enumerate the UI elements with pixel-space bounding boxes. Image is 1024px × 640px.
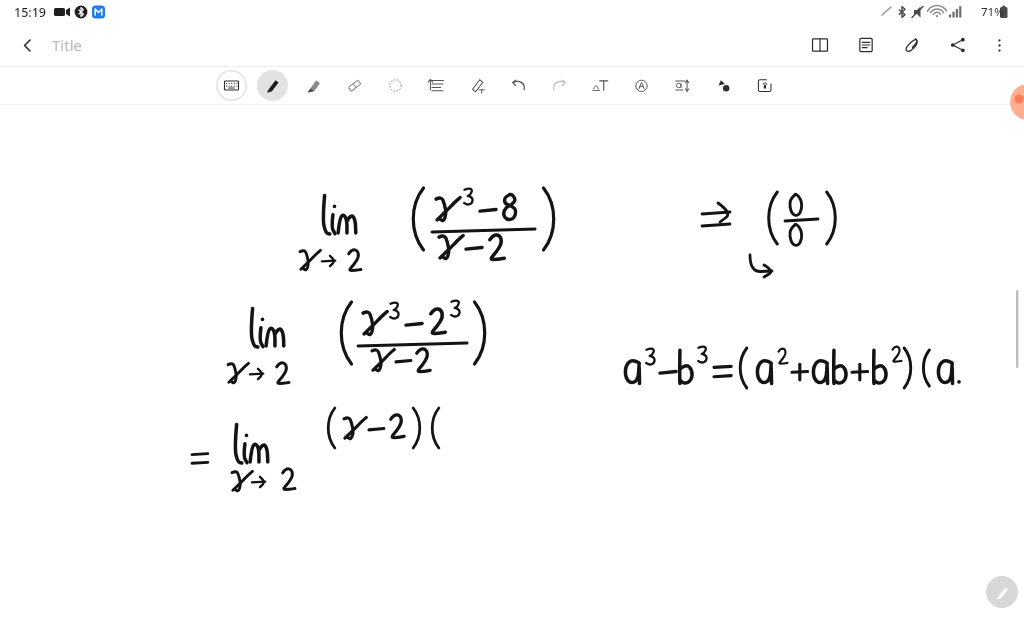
staticText: 15:19 [14,4,47,21]
button[interactable]: Text size [667,70,698,101]
button[interactable]: Edit [986,576,1018,608]
button[interactable]: Auto format [626,70,657,101]
staticText: Title [52,35,82,55]
button[interactable]: Lock canvas [749,70,780,101]
button[interactable]: Share [940,27,976,63]
button[interactable]: Eraser [339,70,370,101]
button[interactable]: Redo [544,70,575,101]
button[interactable]: Keyboard [216,70,247,101]
button[interactable]: Pen [257,70,288,101]
button[interactable]: Shapes [708,70,739,101]
button[interactable]: Select [380,70,411,101]
button[interactable]: Attach [894,27,930,63]
button[interactable]: Reading mode [802,27,838,63]
button[interactable]: Insert space [421,70,452,101]
button[interactable]: Pen settings [462,70,493,101]
button[interactable]: Back [10,28,44,62]
button[interactable]: Highlighter [298,70,329,101]
button[interactable]: Title [48,29,86,61]
button[interactable]: More options [982,28,1016,62]
button[interactable]: Notes [848,27,884,63]
staticText: 71% [981,4,1004,20]
button[interactable]: Undo [503,70,534,101]
button[interactable]: Text recognition [585,70,616,101]
